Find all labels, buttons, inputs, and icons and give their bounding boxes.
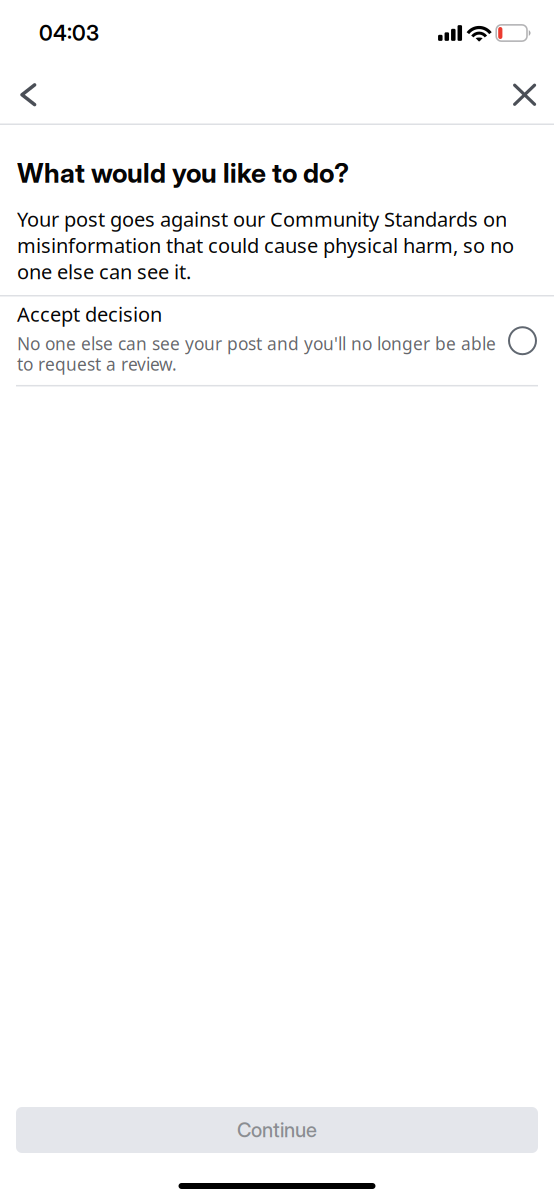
button[interactable]: Back bbox=[6, 70, 50, 120]
staticText: Continue bbox=[237, 1118, 317, 1142]
staticText: Accept decision bbox=[17, 300, 162, 328]
staticText: Your post goes against our Community Sta… bbox=[17, 205, 514, 285]
button[interactable]: Accept decision bbox=[0, 296, 554, 385]
staticText: 04:03 bbox=[39, 20, 99, 46]
staticText: What would you like to do? bbox=[17, 157, 349, 189]
button[interactable]: Close bbox=[503, 70, 547, 120]
staticText: No one else can see your post and you'll… bbox=[17, 332, 496, 376]
button[interactable]: Continue bbox=[16, 1107, 538, 1153]
